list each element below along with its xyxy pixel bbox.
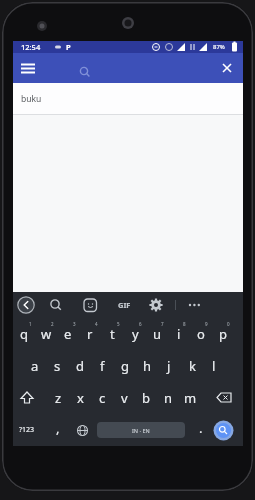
- staticText: 2: [51, 321, 54, 327]
- staticText: buku: [21, 93, 42, 105]
- button[interactable]: d: [70, 351, 90, 381]
- button[interactable]: k: [182, 351, 202, 381]
- staticText: z: [55, 389, 62, 407]
- button[interactable]: [218, 59, 236, 77]
- button[interactable]: j: [159, 351, 179, 381]
- staticText: 5: [117, 321, 120, 327]
- staticText: s: [54, 357, 61, 375]
- staticText: a: [31, 357, 39, 375]
- staticText: r: [87, 325, 93, 343]
- staticText: P: [66, 42, 71, 52]
- button[interactable]: y: [125, 319, 145, 349]
- staticText: 4: [95, 321, 98, 327]
- staticText: ?123: [19, 425, 35, 435]
- button[interactable]: x: [70, 383, 90, 413]
- staticText: y: [132, 325, 139, 343]
- staticText: k: [189, 357, 196, 375]
- staticText: .: [199, 419, 203, 437]
- button[interactable]: t: [102, 319, 122, 349]
- staticText: 1: [29, 321, 32, 327]
- staticText: 87%: [213, 43, 225, 51]
- staticText: t: [110, 325, 115, 343]
- button[interactable]: w: [36, 319, 56, 349]
- button[interactable]: [47, 296, 65, 314]
- button[interactable]: s: [47, 351, 67, 381]
- staticText: m: [184, 389, 197, 407]
- staticText: f: [100, 357, 105, 375]
- staticText: 0: [227, 321, 230, 327]
- button[interactable]: i: [169, 319, 189, 349]
- staticText: l: [212, 357, 216, 375]
- staticText: ,: [56, 419, 60, 437]
- button[interactable]: [81, 296, 99, 314]
- button[interactable]: buku: [13, 83, 243, 114]
- button[interactable]: l: [204, 351, 224, 381]
- staticText: IN · EN: [132, 427, 150, 434]
- button[interactable]: f: [92, 351, 112, 381]
- button[interactable]: g: [115, 351, 135, 381]
- button[interactable]: [185, 296, 205, 314]
- staticText: 9: [205, 321, 208, 327]
- button[interactable]: z: [48, 383, 68, 413]
- button[interactable]: v: [114, 383, 134, 413]
- staticText: j: [167, 357, 171, 375]
- staticText: 3: [73, 321, 76, 327]
- staticText: o: [197, 325, 205, 343]
- button[interactable]: q: [14, 319, 34, 349]
- button[interactable]: GIF: [113, 296, 135, 314]
- button[interactable]: [212, 419, 235, 442]
- button[interactable]: [147, 296, 165, 314]
- button[interactable]: c: [92, 383, 112, 413]
- button[interactable]: n: [158, 383, 178, 413]
- staticText: b: [142, 389, 150, 407]
- staticText: u: [153, 325, 162, 343]
- button[interactable]: b: [136, 383, 156, 413]
- button[interactable]: e: [58, 319, 78, 349]
- staticText: d: [76, 357, 84, 375]
- staticText: h: [143, 357, 152, 375]
- staticText: 12:54: [21, 42, 41, 52]
- staticText: n: [164, 389, 173, 407]
- button[interactable]: [16, 387, 38, 409]
- button[interactable]: [213, 387, 235, 409]
- staticText: 7: [161, 321, 164, 327]
- staticText: g: [121, 357, 129, 375]
- staticText: i: [177, 325, 181, 343]
- staticText: p: [219, 325, 227, 343]
- button[interactable]: ?123: [15, 414, 39, 446]
- staticText: w: [41, 325, 52, 343]
- button[interactable]: o: [191, 319, 211, 349]
- button[interactable]: IN · EN: [97, 422, 185, 438]
- staticText: e: [64, 325, 72, 343]
- button[interactable]: [17, 296, 35, 314]
- staticText: v: [121, 389, 128, 407]
- staticText: c: [99, 389, 106, 407]
- button[interactable]: [17, 61, 39, 77]
- button[interactable]: [71, 414, 93, 446]
- staticText: 6: [139, 321, 142, 327]
- button[interactable]: h: [137, 351, 157, 381]
- staticText: GIF: [118, 300, 131, 310]
- button[interactable]: ,: [48, 413, 68, 443]
- button[interactable]: .: [191, 413, 211, 443]
- button[interactable]: p: [213, 319, 233, 349]
- staticText: q: [20, 325, 28, 343]
- button[interactable]: m: [180, 383, 200, 413]
- staticText: 8: [183, 321, 186, 327]
- staticText: x: [77, 389, 84, 407]
- button[interactable]: r: [80, 319, 100, 349]
- button[interactable]: a: [25, 351, 45, 381]
- button[interactable]: u: [147, 319, 167, 349]
